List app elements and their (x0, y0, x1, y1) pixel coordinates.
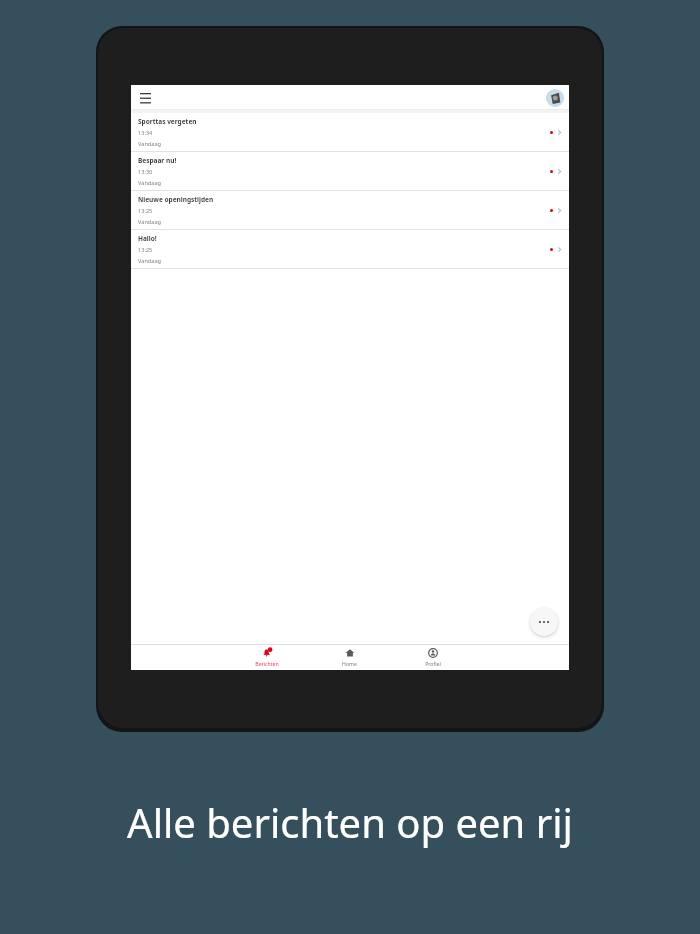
staticText: Vandaag (138, 218, 161, 226)
staticText: Alle berichten op een rij (127, 795, 573, 849)
staticText: Nieuwe openingstijden (138, 195, 214, 204)
staticText: Profiel (425, 660, 441, 667)
staticText: Sporttas vergeten (138, 117, 197, 126)
staticText: Hallo! (138, 234, 157, 243)
staticText: Vandaag (138, 140, 161, 148)
button[interactable]: Hallo! (131, 230, 569, 268)
button[interactable]: Bespaar nu! (131, 152, 569, 190)
button[interactable]: Berichten (225, 645, 308, 670)
button[interactable]: Profiel (546, 89, 564, 107)
staticText: Vandaag (138, 257, 161, 265)
staticText: Berichten (255, 660, 279, 667)
button[interactable]: Profiel (391, 645, 474, 670)
button[interactable]: Home (308, 645, 391, 670)
staticText: 13:25 (138, 207, 153, 215)
button[interactable]: Nieuwe openingstijden (131, 191, 569, 229)
button[interactable]: Meer opties (530, 608, 558, 636)
staticText: 13:25 (138, 246, 153, 254)
staticText: Home (342, 660, 357, 667)
staticText: 13:30 (138, 168, 153, 176)
staticText: Bespaar nu! (138, 156, 177, 165)
button[interactable]: Sporttas vergeten (131, 113, 569, 151)
button[interactable]: Menu (136, 89, 154, 107)
staticText: 13:34 (138, 129, 153, 137)
staticText: Vandaag (138, 179, 161, 187)
